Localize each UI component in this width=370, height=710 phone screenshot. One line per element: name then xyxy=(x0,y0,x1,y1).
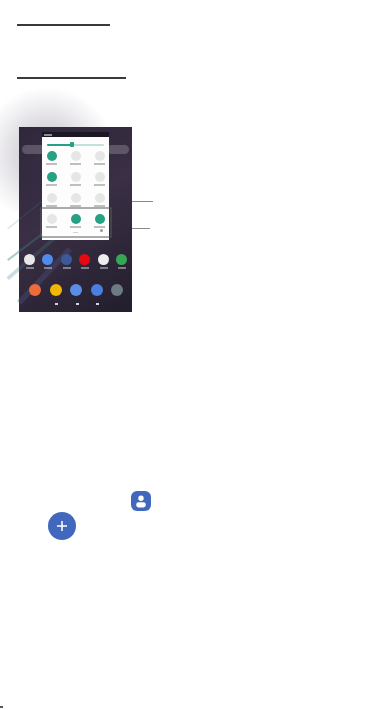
button[interactable] xyxy=(50,284,62,296)
button[interactable] xyxy=(95,193,105,203)
button[interactable] xyxy=(29,284,41,296)
button[interactable] xyxy=(47,151,57,161)
button[interactable] xyxy=(47,172,57,182)
button[interactable] xyxy=(71,151,81,161)
button[interactable]: Add xyxy=(48,512,76,540)
button[interactable] xyxy=(47,214,57,224)
button[interactable] xyxy=(91,284,103,296)
button[interactable] xyxy=(98,254,109,265)
button[interactable] xyxy=(111,284,123,296)
button[interactable] xyxy=(116,254,127,265)
button[interactable] xyxy=(61,254,72,265)
button[interactable] xyxy=(71,193,81,203)
button[interactable] xyxy=(24,254,35,265)
button[interactable] xyxy=(95,151,105,161)
button[interactable] xyxy=(71,214,81,224)
button[interactable] xyxy=(42,254,53,265)
button[interactable] xyxy=(19,127,132,312)
button[interactable] xyxy=(95,172,105,182)
button[interactable] xyxy=(47,193,57,203)
button[interactable]: Account xyxy=(131,491,151,511)
button[interactable] xyxy=(95,214,105,224)
button[interactable] xyxy=(79,254,90,265)
button[interactable] xyxy=(71,172,81,182)
button[interactable] xyxy=(70,284,82,296)
